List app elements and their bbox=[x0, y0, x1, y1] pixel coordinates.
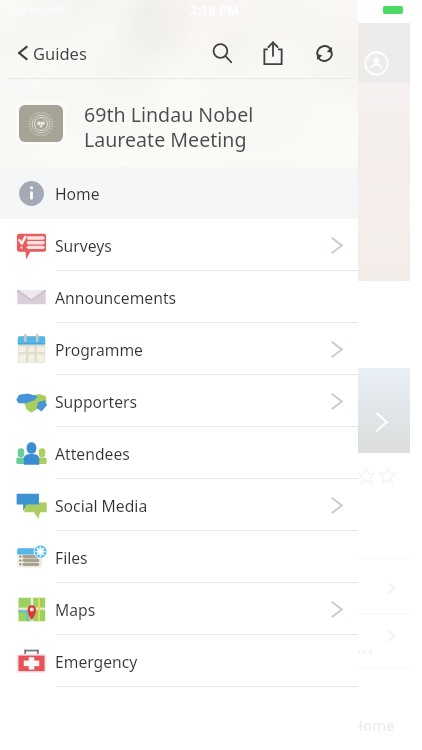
staticText: Social Media bbox=[55, 495, 148, 516]
staticText: 2:18 PM bbox=[190, 1, 240, 19]
button[interactable]: Social Media bbox=[0, 479, 358, 531]
button[interactable]: Announcements bbox=[0, 271, 358, 323]
staticText: Programme bbox=[55, 339, 143, 360]
button[interactable]: Surveys bbox=[0, 219, 358, 271]
staticText: Files bbox=[55, 547, 88, 568]
button[interactable]: Attendees bbox=[0, 427, 358, 479]
staticText: 69th Lindau Nobel Laureate Meeting bbox=[84, 101, 254, 152]
staticText: Maps bbox=[55, 599, 96, 620]
button[interactable]: Programme bbox=[0, 323, 358, 375]
button[interactable]: Emergency bbox=[0, 635, 358, 687]
staticText: Emergency bbox=[55, 651, 138, 672]
button[interactable]: Guides bbox=[16, 30, 87, 76]
button[interactable]: Maps bbox=[0, 583, 358, 635]
staticText: Guides bbox=[33, 42, 87, 64]
staticText: Attendees bbox=[55, 443, 130, 464]
button[interactable]: Search bbox=[200, 30, 244, 76]
staticText: Announcements bbox=[55, 287, 177, 308]
button[interactable]: Home bbox=[0, 167, 358, 219]
button[interactable]: Files bbox=[0, 531, 358, 583]
staticText: Surveys bbox=[55, 235, 112, 256]
staticText: Home bbox=[55, 183, 100, 204]
staticText: Home bbox=[352, 715, 395, 735]
button[interactable]: Supporters bbox=[0, 375, 358, 427]
button[interactable]: Share bbox=[251, 30, 295, 76]
button[interactable]: Refresh bbox=[302, 30, 346, 76]
staticText: Supporters bbox=[55, 391, 138, 412]
